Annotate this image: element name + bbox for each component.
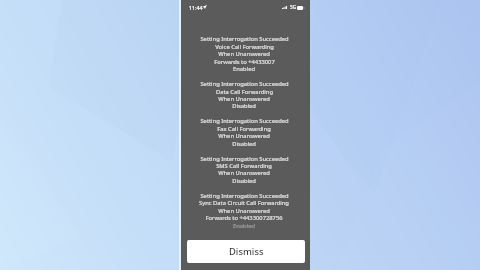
staticText: Dismiss — [229, 245, 264, 258]
staticText: Voice Call Forwarding — [215, 43, 274, 51]
staticText: Forwards to +443300728756 — [205, 214, 283, 222]
staticText: Setting Interrogation Succeeded — [200, 192, 289, 200]
staticText: Setting Interrogation Succeeded — [200, 80, 289, 88]
staticText: Disabled — [232, 102, 256, 110]
staticText: Data Call Forwarding — [216, 88, 273, 96]
staticText: Setting Interrogation Succeeded — [200, 117, 289, 125]
staticText: Setting Interrogation Succeeded — [200, 35, 289, 43]
staticText: SMS Call Forwarding — [216, 162, 272, 170]
staticText: Fax Call Forwarding — [217, 125, 271, 133]
staticText: When Unanswered — [218, 95, 270, 103]
staticText: Enabled — [233, 222, 255, 230]
staticText: Forwards to +4433007 — [214, 58, 275, 66]
staticText: Disabled — [232, 177, 256, 185]
staticText: When Unanswered — [218, 132, 270, 140]
staticText: When Unanswered — [218, 169, 270, 177]
staticText: When Unanswered — [218, 50, 270, 58]
button[interactable]: Dismiss — [187, 240, 305, 263]
staticText: Enabled — [233, 65, 255, 73]
staticText: Sync Data Circuit Call Forwarding — [199, 199, 289, 207]
staticText: Setting Interrogation Succeeded — [200, 155, 289, 163]
staticText: 5G — [290, 4, 297, 10]
staticText: When Unanswered — [218, 207, 270, 215]
staticText: 11:44 — [189, 4, 203, 11]
staticText: Disabled — [232, 140, 256, 148]
